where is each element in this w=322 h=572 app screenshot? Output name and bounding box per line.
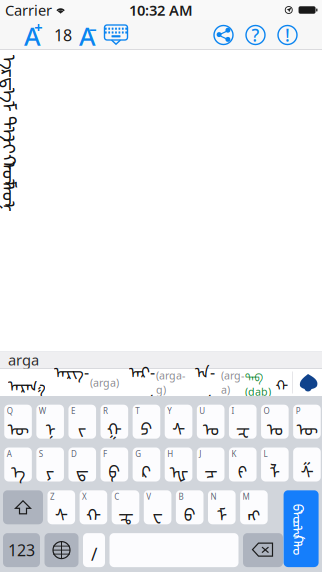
staticText: (argag) xyxy=(156,368,185,397)
staticText: ? xyxy=(251,23,259,46)
staticText: ᠡ xyxy=(5,46,20,78)
staticText: B xyxy=(178,491,183,502)
button[interactable]: X xyxy=(80,490,107,524)
staticText: ᠡ xyxy=(5,79,20,111)
button[interactable]: U xyxy=(197,405,224,439)
button[interactable]: Share xyxy=(213,24,234,45)
staticText: 10:32 AM xyxy=(129,0,193,20)
button[interactable]: V xyxy=(144,490,171,524)
staticText: I xyxy=(231,406,234,416)
staticText: N xyxy=(210,491,216,502)
staticText: V xyxy=(146,491,151,502)
button[interactable]: I xyxy=(229,405,256,439)
staticText: ᠬ xyxy=(275,370,288,395)
button[interactable]: B xyxy=(176,490,203,524)
staticText: ᠷ xyxy=(8,57,17,89)
staticText: 18 xyxy=(54,24,72,46)
button[interactable]: C xyxy=(112,490,139,524)
button[interactable]: Z xyxy=(47,490,75,524)
button[interactable]: M xyxy=(240,490,268,524)
staticText: X xyxy=(82,491,87,502)
staticText: A xyxy=(79,19,96,53)
button[interactable]: Input method options xyxy=(297,371,319,393)
staticText: ᠼ xyxy=(118,496,133,526)
staticText: (arga) xyxy=(90,375,119,390)
button[interactable]: L xyxy=(261,447,289,481)
staticText: Q xyxy=(7,406,13,416)
staticText: S xyxy=(39,448,43,459)
button[interactable]: T xyxy=(133,405,160,439)
button[interactable]: G xyxy=(133,447,160,481)
button[interactable]: Return xyxy=(284,490,319,567)
button[interactable]: ᠠᠷᠭ᠎ᠠ xyxy=(191,369,275,396)
button[interactable]: About xyxy=(277,24,298,45)
staticText: ᠹ xyxy=(108,454,120,483)
button[interactable]: Increase font size xyxy=(24,20,44,50)
staticText: arga xyxy=(8,350,39,370)
button[interactable] xyxy=(293,447,321,481)
button[interactable]: Help xyxy=(245,24,266,45)
staticText: T xyxy=(135,406,139,416)
staticText: / xyxy=(91,543,97,566)
staticText: ᠥ xyxy=(1,157,24,189)
staticText: ᠠᠷᠭ᠎ᠠ xyxy=(8,369,46,396)
button[interactable]: Delete xyxy=(243,533,283,567)
button[interactable]: K xyxy=(229,447,256,481)
staticText: Z xyxy=(50,491,55,502)
button[interactable]: D xyxy=(68,447,96,481)
staticText: ᠰ xyxy=(55,496,68,526)
staticText: ᠪ xyxy=(184,496,196,526)
button[interactable]: Q xyxy=(4,405,32,439)
button[interactable]: ᠠᠷᠭ᠎ᠠ xyxy=(50,369,123,396)
staticText: ᠤ xyxy=(294,504,308,529)
staticText: ᠳ xyxy=(6,68,20,100)
staticText: ᠬ xyxy=(86,496,101,526)
staticText: ᠠ xyxy=(294,520,308,545)
button[interactable]: E xyxy=(68,405,96,439)
button[interactable]: J xyxy=(197,447,224,481)
button[interactable]: R xyxy=(101,405,128,439)
staticText: ᠬ xyxy=(5,146,21,178)
button[interactable]: A xyxy=(4,447,32,481)
button[interactable]: F xyxy=(101,447,128,481)
staticText: ᠠᠷᠭ᠎ᠠ xyxy=(54,355,89,410)
button[interactable]: Y xyxy=(165,405,192,439)
staticText: ᠻ xyxy=(238,454,248,483)
staticText: ᠩ xyxy=(247,496,260,526)
staticText: ᠺ xyxy=(141,454,151,483)
staticText: H xyxy=(167,448,173,459)
button[interactable]: 123 xyxy=(3,533,40,567)
staticText: ᠤ xyxy=(294,536,308,561)
button[interactable]: S xyxy=(36,447,64,481)
staticText: ᠨ xyxy=(45,411,55,440)
staticText: ᠦ xyxy=(1,179,24,211)
staticText: ᠮ xyxy=(7,168,18,200)
staticText: 123 xyxy=(8,539,35,561)
staticText: (arga) xyxy=(221,368,244,397)
button[interactable]: ᠠᠷᠭ᠎ᠠ xyxy=(4,369,50,396)
staticText: E xyxy=(71,406,75,416)
staticText: ᠽ xyxy=(236,411,250,440)
button[interactable]: H xyxy=(165,447,192,481)
button[interactable]: O xyxy=(261,405,289,439)
staticText: ᠦ xyxy=(8,411,29,440)
staticText: A xyxy=(24,19,41,53)
staticText: ᠳᠠᠪ (dab) xyxy=(245,366,271,399)
button[interactable]: Decrease font size xyxy=(79,20,99,50)
button[interactable]: Shift xyxy=(3,490,43,524)
staticText: ᠰ xyxy=(172,411,185,440)
staticText: ᠭ xyxy=(107,411,122,440)
button[interactable]: N xyxy=(208,490,236,524)
button[interactable] xyxy=(83,533,105,567)
staticText: ᠠᠷᠭᠠᠭ xyxy=(129,355,155,410)
staticText: ᠡ xyxy=(5,118,20,150)
button[interactable]: Next keyboard xyxy=(44,533,78,567)
staticText: ᠤ xyxy=(267,411,283,440)
button[interactable]: W xyxy=(36,405,64,439)
button[interactable]: Hide keyboard xyxy=(104,24,128,45)
button[interactable]: P xyxy=(293,405,321,439)
staticText: Carrier xyxy=(5,0,52,20)
staticText: ᠫ xyxy=(140,411,152,440)
button[interactable]: ᠠᠷᠭᠠᠭ xyxy=(123,369,191,396)
